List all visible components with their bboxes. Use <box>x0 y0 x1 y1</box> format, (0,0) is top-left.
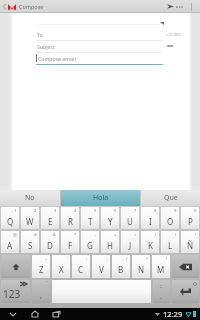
staticText: 12:29 <box>163 309 183 319</box>
button[interactable]: Send <box>166 0 175 13</box>
button[interactable]: Recent apps <box>50 308 63 320</box>
button[interactable]: Hola <box>61 190 140 206</box>
staticText: – <box>45 256 48 262</box>
staticText: M <box>157 264 165 275</box>
button[interactable]: 9 <box>161 207 179 229</box>
button[interactable]: enter <box>172 280 199 303</box>
button[interactable]: & <box>41 231 59 253</box>
button[interactable]: – <box>32 255 50 278</box>
staticText: 2 <box>34 208 37 214</box>
button[interactable]: 0 <box>181 207 199 229</box>
button[interactable]: No <box>0 190 60 206</box>
staticText: @ <box>13 232 17 238</box>
staticText: 1 <box>14 208 17 214</box>
staticText: 8 <box>154 208 157 214</box>
staticText: Compose <box>19 3 44 10</box>
staticText: + CC/BCC <box>166 32 182 37</box>
button[interactable]: + <box>101 231 119 253</box>
staticText: ) <box>175 232 177 238</box>
button[interactable]: * <box>61 231 79 253</box>
staticText: # <box>34 232 37 238</box>
button[interactable]: Que <box>141 190 200 206</box>
staticText: - <box>95 232 97 238</box>
button[interactable]: ( <box>141 231 159 253</box>
staticText: Compose email <box>38 55 76 62</box>
button[interactable]: 2 <box>21 207 39 229</box>
button[interactable]: To <box>13 29 189 41</box>
staticText: Ñ <box>187 240 194 251</box>
staticText: To <box>37 31 43 38</box>
staticText: F <box>68 240 73 251</box>
button[interactable]: Navigate up <box>1 0 8 13</box>
button[interactable]: shift <box>1 255 30 278</box>
button[interactable]: del <box>172 255 199 278</box>
button[interactable]: = <box>121 231 139 253</box>
staticText: C <box>78 264 84 275</box>
button[interactable]: More options <box>175 0 184 13</box>
staticText: Z <box>39 264 44 275</box>
staticText: L <box>168 240 173 251</box>
staticText: K <box>148 240 153 251</box>
button[interactable]: 123 <box>1 280 30 303</box>
staticText: + <box>114 232 117 238</box>
staticText: R <box>68 216 73 227</box>
staticText: T <box>88 216 93 227</box>
staticText: 4 <box>74 208 77 214</box>
button[interactable]: : <box>72 255 90 278</box>
button[interactable]: ! <box>152 255 170 278</box>
staticText: Y <box>108 216 113 227</box>
button[interactable]: Compose email <box>13 53 189 65</box>
button[interactable]: Subject <box>13 41 189 53</box>
staticText: W <box>26 216 34 227</box>
staticText: ´ <box>46 280 48 287</box>
button[interactable]: 7 <box>121 207 139 229</box>
staticText: , <box>40 289 43 300</box>
button[interactable]: @ <box>1 231 19 253</box>
button[interactable]: 3 <box>41 207 59 229</box>
button[interactable]: ! <box>181 231 199 253</box>
button[interactable]: 6 <box>101 207 119 229</box>
button[interactable]: ) <box>161 231 179 253</box>
staticText: G <box>87 240 93 251</box>
staticText: J <box>129 240 132 251</box>
button[interactable]: 1 <box>1 207 19 229</box>
button[interactable]: Home <box>28 308 41 320</box>
button[interactable]: 5 <box>81 207 99 229</box>
button[interactable]: # <box>21 231 39 253</box>
button[interactable]: ' <box>52 255 70 278</box>
button[interactable]: comma <box>32 280 50 303</box>
staticText: Q <box>7 216 14 227</box>
staticText: B <box>118 264 124 275</box>
staticText: * <box>74 232 77 238</box>
staticText: : <box>86 256 88 262</box>
button[interactable]: From account <box>13 18 189 25</box>
staticText: No <box>25 193 35 203</box>
staticText: V <box>99 264 104 275</box>
button[interactable]: ? <box>132 255 150 278</box>
staticText: = <box>134 232 137 238</box>
button[interactable]: ; <box>92 255 110 278</box>
staticText: 7 <box>134 208 137 214</box>
staticText: O <box>167 216 174 227</box>
staticText: A <box>7 240 13 251</box>
staticText: 123 <box>3 287 21 301</box>
button[interactable]: - <box>81 231 99 253</box>
staticText: N <box>138 264 145 275</box>
staticText: Hola <box>93 193 109 203</box>
staticText: 9 <box>174 208 177 214</box>
staticText: ' <box>67 256 68 262</box>
staticText: ! <box>195 232 197 238</box>
staticText: I <box>149 216 152 227</box>
staticText: S <box>28 240 33 251</box>
staticText: & <box>53 232 57 238</box>
button[interactable]: 8 <box>141 207 159 229</box>
button[interactable]: Space <box>52 280 151 303</box>
staticText: E <box>48 216 53 227</box>
button[interactable]: Back <box>6 308 19 320</box>
staticText: :; <box>160 283 163 290</box>
button[interactable]: 4 <box>61 207 79 229</box>
staticText: 0 <box>194 208 197 214</box>
button[interactable]: period <box>153 280 170 303</box>
staticText: ! <box>166 256 168 262</box>
button[interactable]: / <box>112 255 130 278</box>
